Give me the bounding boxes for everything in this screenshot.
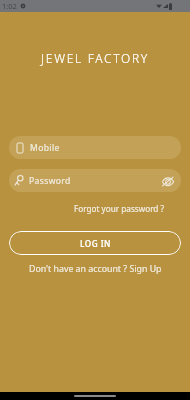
button[interactable]: Forgot your password ? (72, 202, 167, 215)
button[interactable]: LOG IN (9, 231, 181, 255)
button[interactable]: Password (9, 169, 181, 192)
staticText: Don't have an account ? Sign Up (29, 263, 162, 275)
staticText: Mobile (30, 142, 60, 154)
staticText: LOG IN (80, 238, 111, 249)
button[interactable]: Show password (161, 174, 175, 188)
staticText: 1:02 (2, 1, 17, 11)
staticText: JEWEL FACTORY (0, 50, 190, 66)
staticText: Password (29, 175, 71, 187)
button[interactable]: Don't have an account ? Sign Up (27, 262, 164, 276)
button[interactable]: Mobile (9, 136, 181, 159)
staticText: Forgot your password ? (74, 203, 165, 214)
